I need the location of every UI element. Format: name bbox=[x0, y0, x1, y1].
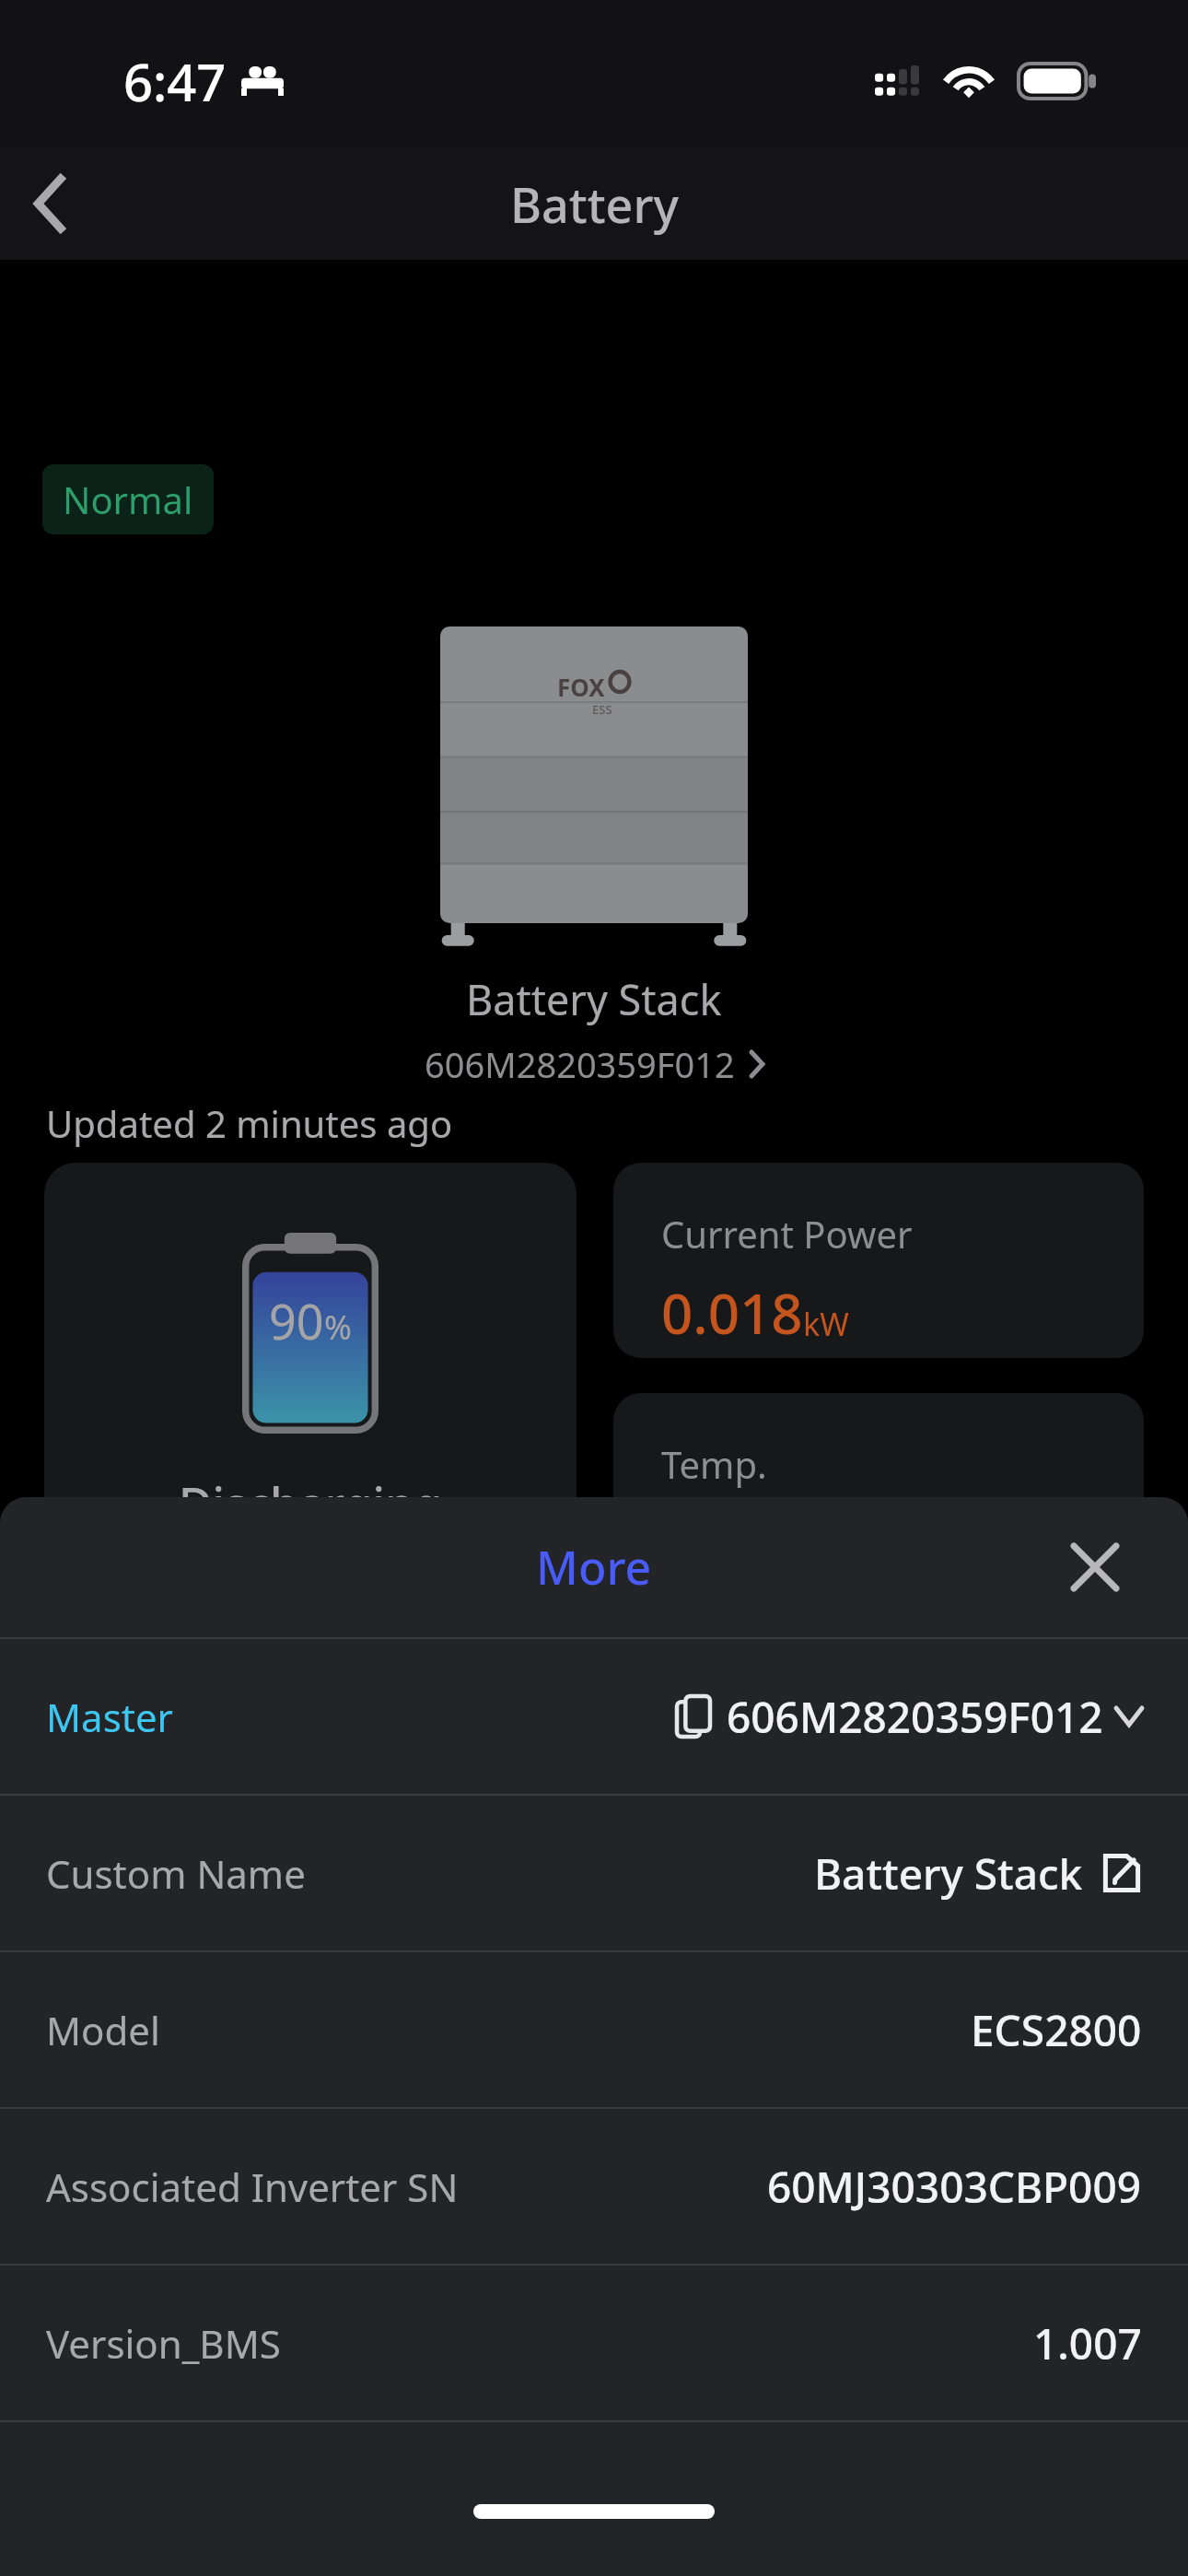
staticText: FOX bbox=[557, 671, 605, 703]
button[interactable]: Normal bbox=[42, 464, 214, 534]
staticText: ESS bbox=[592, 701, 612, 718]
staticText: Model bbox=[46, 2004, 160, 2056]
button[interactable]: Version_BMS bbox=[0, 2266, 1188, 2420]
button[interactable]: More bbox=[536, 1536, 652, 1598]
button[interactable]: Temp. bbox=[613, 1393, 1144, 1588]
staticText: % bbox=[324, 1305, 352, 1350]
staticText: 606M2820359F012 bbox=[425, 1040, 735, 1088]
button[interactable]: Current Power bbox=[613, 1163, 1144, 1358]
staticText: Current Power bbox=[661, 1209, 913, 1259]
staticText: 90 bbox=[269, 1288, 324, 1353]
staticText: 606M2820359F012 bbox=[727, 1688, 1103, 1746]
button[interactable]: Info bbox=[645, 1623, 1142, 1808]
staticText: Battery bbox=[510, 171, 679, 237]
staticText: Normal bbox=[63, 474, 193, 524]
staticText: Master bbox=[46, 1691, 173, 1743]
button[interactable]: Model bbox=[0, 1952, 1188, 2107]
staticText: ECS2800 bbox=[971, 2001, 1142, 2059]
button[interactable]: 90 bbox=[44, 1163, 577, 1605]
staticText: 6:47 bbox=[123, 46, 227, 116]
staticText: Battery Stack bbox=[814, 1844, 1083, 1903]
button[interactable]: Custom Name bbox=[0, 1796, 1188, 1950]
staticText: Discharging bbox=[179, 1472, 443, 1535]
staticText: kW bbox=[803, 1303, 849, 1345]
staticText: 0.018 bbox=[661, 1275, 803, 1351]
staticText: 1.007 bbox=[1033, 2314, 1142, 2372]
button[interactable]: Associated Inverter SN bbox=[0, 2109, 1188, 2264]
staticText: Associated Inverter SN bbox=[46, 2160, 459, 2213]
staticText: Custom Name bbox=[46, 1847, 306, 1900]
staticText: Temp. bbox=[661, 1439, 767, 1489]
staticText: 60MJ30303CBP009 bbox=[767, 2158, 1142, 2216]
staticText: Battery Stack bbox=[466, 971, 722, 1027]
button[interactable]: Master bbox=[0, 1639, 1188, 1794]
button[interactable]: Settings bbox=[44, 1623, 615, 1808]
button[interactable]: 606M2820359F012 bbox=[425, 1040, 764, 1088]
button[interactable]: Close bbox=[1054, 1526, 1136, 1609]
staticText: Version_BMS bbox=[46, 2317, 281, 2370]
button[interactable]: Back bbox=[0, 153, 101, 254]
staticText: Updated 2 minutes ago bbox=[46, 1098, 453, 1148]
